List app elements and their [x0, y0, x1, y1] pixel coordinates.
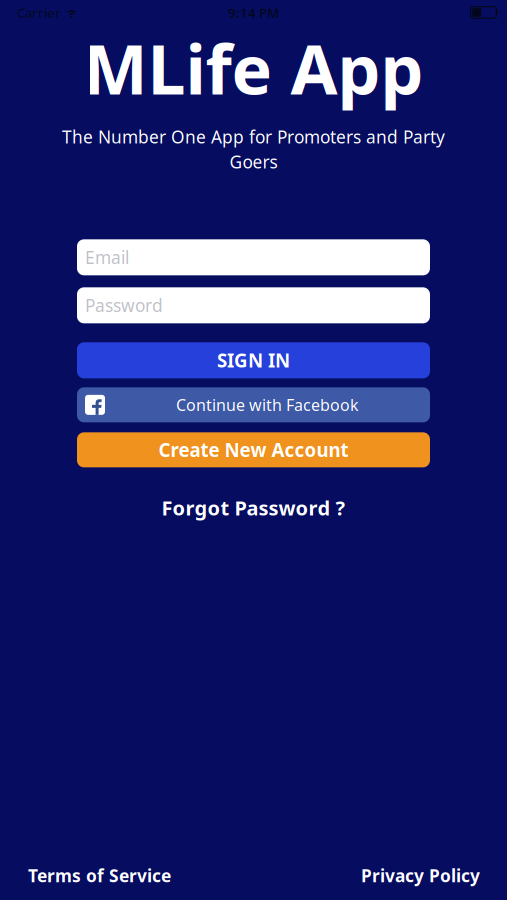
button[interactable]: Terms of Service: [28, 864, 171, 887]
staticText: The Number One App for Promoters and Par…: [62, 125, 445, 148]
staticText: Email: [85, 246, 129, 269]
button[interactable]: Privacy Policy: [361, 864, 480, 887]
button[interactable]: SIGN IN: [77, 342, 430, 378]
button[interactable]: Email: [77, 239, 430, 275]
button[interactable]: Create New Account: [77, 432, 430, 467]
staticText: Terms of Service: [28, 864, 171, 887]
staticText: Create New Account: [158, 437, 348, 462]
button[interactable]: Forgot Password ?: [161, 494, 345, 521]
staticText: 9:14 PM: [228, 4, 279, 21]
staticText: Forgot Password ?: [161, 494, 345, 521]
button[interactable]: Password: [77, 287, 430, 323]
staticText: Privacy Policy: [361, 864, 480, 887]
button[interactable]: Continue with Facebook: [77, 387, 430, 422]
staticText: MLife App: [83, 23, 423, 113]
staticText: Password: [85, 294, 163, 317]
staticText: SIGN IN: [217, 348, 290, 373]
staticText: Goers: [229, 150, 277, 173]
staticText: Continue with Facebook: [176, 394, 359, 415]
staticText: Carrier: [17, 4, 61, 21]
